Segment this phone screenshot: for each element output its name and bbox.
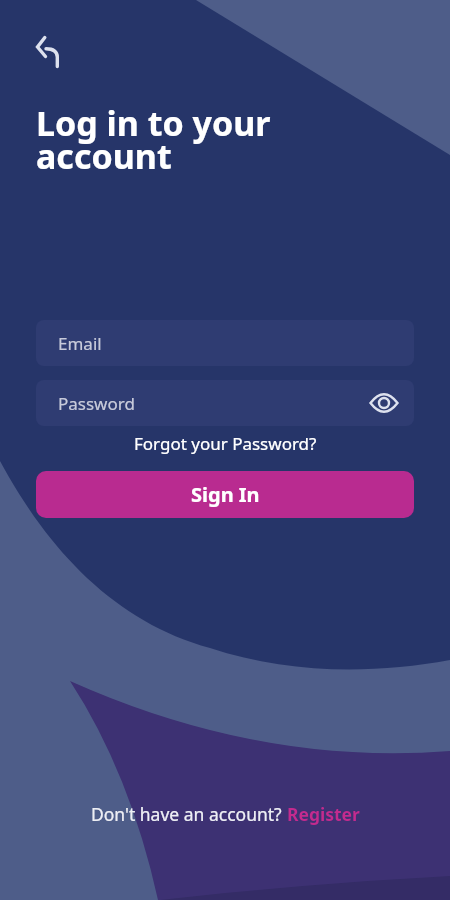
- staticText: Sign In: [191, 481, 260, 508]
- button[interactable]: Email: [36, 320, 414, 366]
- button[interactable]: [26, 27, 68, 69]
- button[interactable]: Sign In: [36, 471, 414, 518]
- staticText: Don't have an account?: [91, 802, 287, 826]
- staticText: Password: [58, 392, 135, 415]
- button[interactable]: Password: [36, 380, 414, 426]
- staticText: Email: [58, 332, 102, 355]
- button[interactable]: [369, 390, 399, 416]
- button[interactable]: Forgot your Password?: [134, 432, 317, 455]
- staticText: Log in to your account: [36, 100, 271, 179]
- button[interactable]: Register: [287, 802, 360, 826]
